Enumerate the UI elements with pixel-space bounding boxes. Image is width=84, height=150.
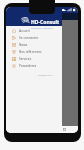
button[interactable]: Paramètres	[6, 62, 62, 69]
button[interactable]: Recents	[63, 128, 66, 131]
button[interactable]: Nos références	[6, 48, 62, 55]
button[interactable]: Accueil	[6, 27, 62, 34]
staticText: Paramètres	[19, 64, 37, 68]
staticText: Se connecter	[19, 36, 39, 40]
staticText: News	[19, 43, 28, 47]
staticText: Nos références	[19, 50, 42, 54]
staticText: Version 2.3.1	[38, 73, 54, 76]
staticText: Accueil	[19, 29, 30, 33]
staticText: HD-Consult	[31, 19, 60, 26]
staticText: Services	[19, 57, 32, 61]
button[interactable]: News	[6, 41, 62, 48]
button[interactable]: Se connecter	[6, 34, 62, 41]
staticText: Nouvelles Attitudes	[31, 26, 53, 29]
button[interactable]: Services	[6, 55, 62, 62]
